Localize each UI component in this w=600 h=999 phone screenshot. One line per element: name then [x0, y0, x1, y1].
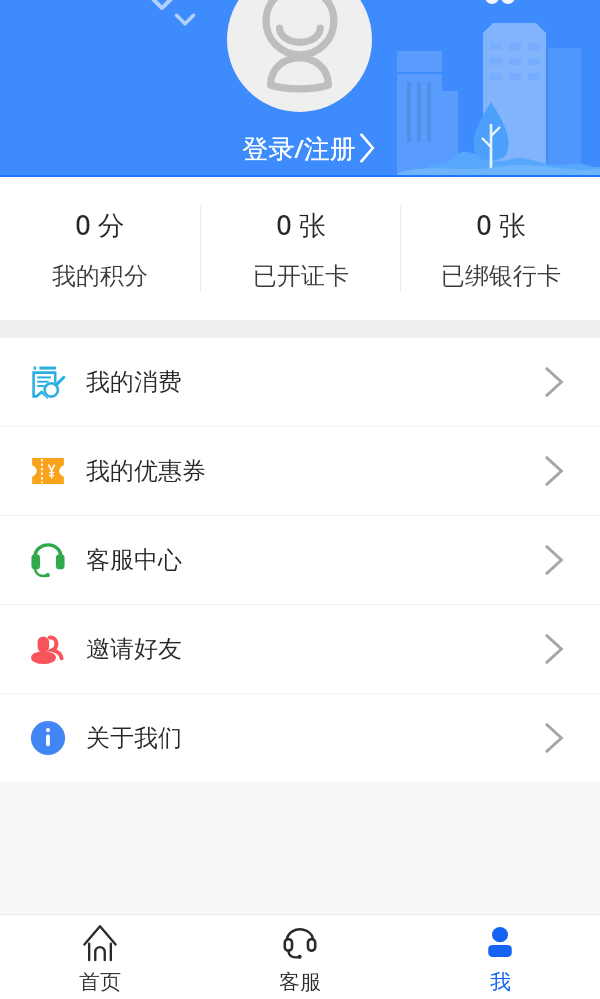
button[interactable]: 邀请好友	[0, 605, 600, 693]
staticText: 首页	[79, 969, 121, 995]
staticText: 关于我们	[86, 723, 182, 753]
staticText: 我	[490, 969, 511, 995]
staticText: 客服中心	[86, 545, 182, 575]
staticText: 邀请好友	[86, 634, 182, 664]
button[interactable]: 客服	[200, 915, 400, 999]
button[interactable]: 我的优惠券	[0, 427, 600, 515]
button[interactable]: 我的消费	[0, 338, 600, 426]
button[interactable]: 0 张	[401, 177, 600, 320]
staticText: 0 分	[75, 206, 125, 243]
staticText: 我的积分	[52, 261, 148, 291]
button[interactable]: 登录/注册	[232, 126, 386, 170]
staticText: 我的优惠券	[86, 456, 206, 486]
staticText: 0 张	[276, 206, 326, 243]
button[interactable]: 关于我们	[0, 694, 600, 782]
staticText: 登录/注册	[242, 130, 356, 166]
button[interactable]: 我	[400, 915, 600, 999]
button[interactable]: Avatar	[227, 0, 372, 112]
staticText: 已绑银行卡	[441, 261, 561, 291]
staticText: 已开证卡	[253, 261, 349, 291]
button[interactable]: 客服中心	[0, 516, 600, 604]
staticText: 客服	[279, 969, 321, 995]
staticText: 0 张	[476, 206, 526, 243]
button[interactable]: 首页	[0, 915, 200, 999]
staticText: 我的消费	[86, 367, 182, 397]
button[interactable]: 0 张	[201, 177, 400, 320]
button[interactable]: 0 分	[0, 177, 200, 320]
